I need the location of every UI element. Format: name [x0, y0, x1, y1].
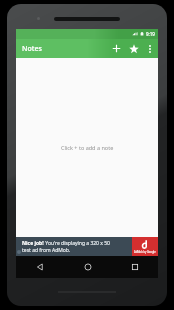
staticText: Notes — [22, 44, 42, 54]
button[interactable]: Add note — [108, 40, 125, 57]
staticText: AdMob by Google — [134, 250, 156, 254]
button[interactable]: Home — [64, 256, 111, 278]
staticText: 9:19 — [146, 31, 155, 37]
button[interactable]: More options — [142, 41, 157, 56]
button[interactable]: Back — [16, 256, 64, 278]
button[interactable]: Recent apps — [111, 256, 158, 278]
staticText: Click + to add a note — [61, 144, 114, 151]
staticText: test ad from AdMob. — [22, 247, 71, 254]
staticText: You're displaying a 320 x 50 — [44, 240, 110, 247]
button[interactable]: Favorites — [125, 40, 142, 57]
button[interactable]: Nice job! — [16, 237, 158, 256]
staticText: Nice job! — [22, 240, 44, 247]
